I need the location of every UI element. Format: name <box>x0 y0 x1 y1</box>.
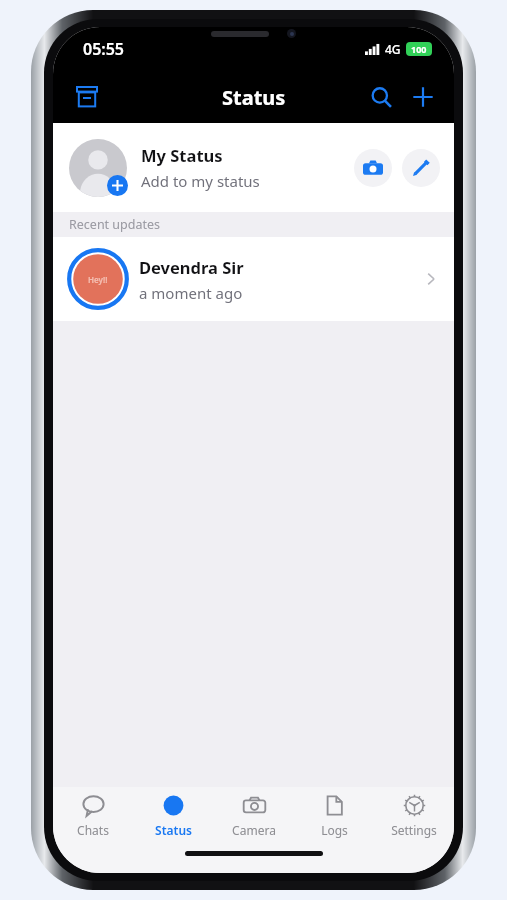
staticText: Hey!! <box>88 274 108 285</box>
staticText: a moment ago <box>139 283 243 303</box>
button[interactable]: Search <box>360 76 402 118</box>
button[interactable]: Camera <box>214 787 294 845</box>
staticText: Status <box>155 822 192 838</box>
staticText: Logs <box>321 822 348 838</box>
staticText: My Status <box>141 144 223 166</box>
button[interactable]: My Status <box>53 123 454 212</box>
button[interactable]: Settings <box>374 787 454 845</box>
staticText: 100 <box>411 43 427 55</box>
button[interactable]: Logs <box>294 787 374 845</box>
staticText: Status <box>222 84 286 111</box>
button[interactable]: Status <box>133 787 213 845</box>
staticText: Recent updates <box>69 216 161 233</box>
button[interactable]: Write status <box>402 149 440 187</box>
staticText: Chats <box>77 822 109 838</box>
staticText: 4G <box>385 41 401 57</box>
staticText: Camera <box>232 822 276 838</box>
button[interactable]: Chats <box>53 787 133 845</box>
staticText: Devendra Sir <box>139 256 244 278</box>
button[interactable]: Archived <box>67 77 107 117</box>
button[interactable]: Hey!! <box>53 237 454 321</box>
staticText: 05:55 <box>83 38 125 60</box>
button[interactable]: Take photo <box>354 149 392 187</box>
button[interactable]: New status <box>402 76 444 118</box>
staticText: Add to my status <box>141 171 260 191</box>
staticText: Settings <box>391 822 437 838</box>
